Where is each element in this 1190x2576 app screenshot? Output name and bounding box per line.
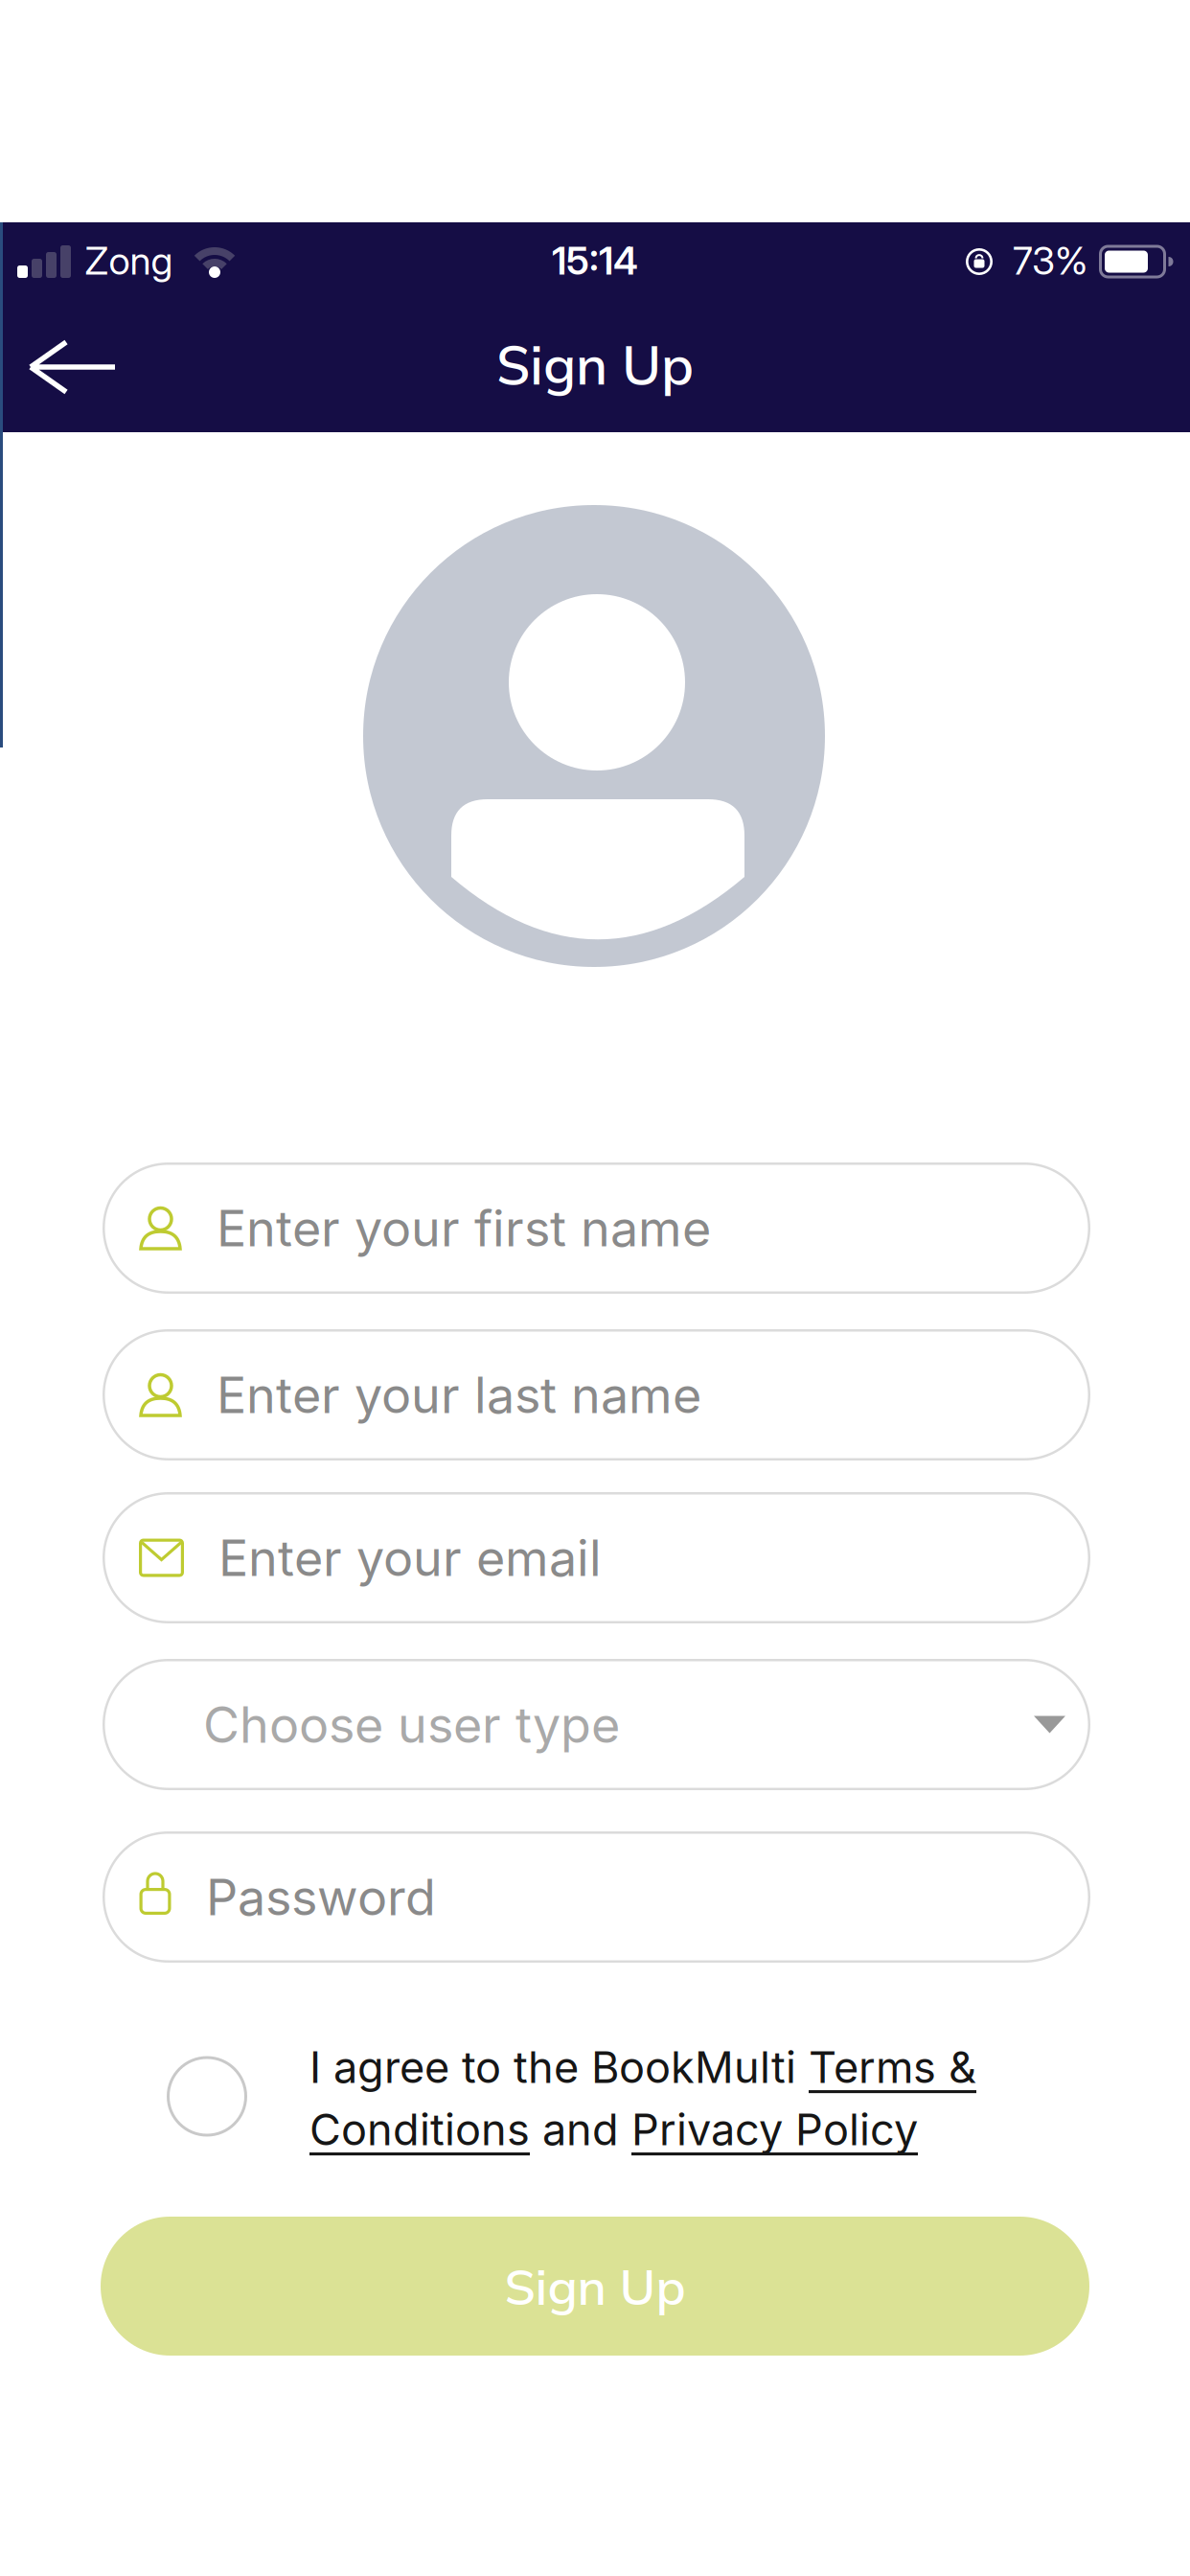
staticText: 15:14 (552, 237, 638, 284)
staticText: Terms & (809, 2041, 976, 2093)
staticText: Zong (85, 237, 173, 284)
button[interactable]: Enter your last name (103, 1329, 1090, 1460)
staticText: Choose user type (203, 1694, 620, 1755)
staticText: Enter your first name (217, 1198, 711, 1258)
staticText: Password (206, 1867, 436, 1927)
staticText: Conditions (309, 2103, 530, 2155)
button[interactable]: Agree to terms (167, 2056, 247, 2137)
button[interactable]: Sign Up (101, 2217, 1089, 2356)
button[interactable]: Choose user type (103, 1659, 1090, 1790)
staticText: Enter your last name (217, 1365, 701, 1425)
button[interactable]: Password (103, 1831, 1090, 1963)
staticText: Sign Up (504, 2255, 686, 2317)
button[interactable]: Conditions (309, 2103, 530, 2155)
button[interactable]: Enter your email (103, 1492, 1090, 1623)
staticText: and (530, 2103, 631, 2155)
button[interactable]: Terms & (809, 2041, 976, 2093)
staticText: 73% (1013, 237, 1087, 284)
staticText: Privacy Policy (631, 2103, 918, 2155)
staticText: I agree to the BookMulti (309, 2041, 809, 2093)
button[interactable]: Enter your first name (103, 1162, 1090, 1294)
staticText: Sign Up (496, 331, 694, 398)
staticText: Enter your email (218, 1528, 602, 1588)
button[interactable]: Privacy Policy (631, 2103, 918, 2155)
button[interactable]: Back (20, 341, 126, 393)
